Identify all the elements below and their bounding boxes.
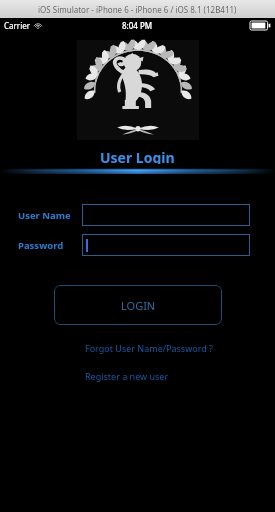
staticText: Carrier [4,20,31,31]
staticText: Forgot User Name/Password ? [85,342,214,354]
staticText: LOGIN [121,298,156,313]
button[interactable]: LOGIN [54,285,222,325]
staticText: User Name [18,209,71,222]
staticText: User Login [100,148,175,164]
button[interactable]: Forgot User Name/Password ? [85,341,214,355]
button[interactable] [82,204,250,226]
staticText: 8:04 PM [122,20,153,31]
button[interactable]: Register a new user [85,369,169,383]
staticText: Password [18,239,64,252]
staticText: iOS Simulator - iPhone 6 - iPhone 6 / iO… [38,4,237,15]
staticText: Register a new user [85,370,169,382]
button[interactable] [82,234,250,256]
